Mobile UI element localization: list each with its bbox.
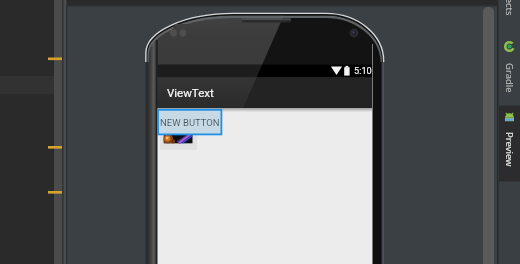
button[interactable] bbox=[499, 36, 520, 102]
staticText: 5:10 bbox=[354, 65, 372, 76]
staticText: Projects bbox=[503, 0, 516, 16]
staticText: Preview bbox=[503, 132, 516, 167]
button[interactable]: NEW BUTTON bbox=[158, 110, 221, 134]
button[interactable] bbox=[499, 0, 520, 26]
staticText: Gradle bbox=[503, 63, 516, 93]
staticText: NEW BUTTON bbox=[160, 117, 220, 128]
button[interactable] bbox=[499, 105, 520, 181]
staticText: ViewText bbox=[167, 86, 214, 99]
